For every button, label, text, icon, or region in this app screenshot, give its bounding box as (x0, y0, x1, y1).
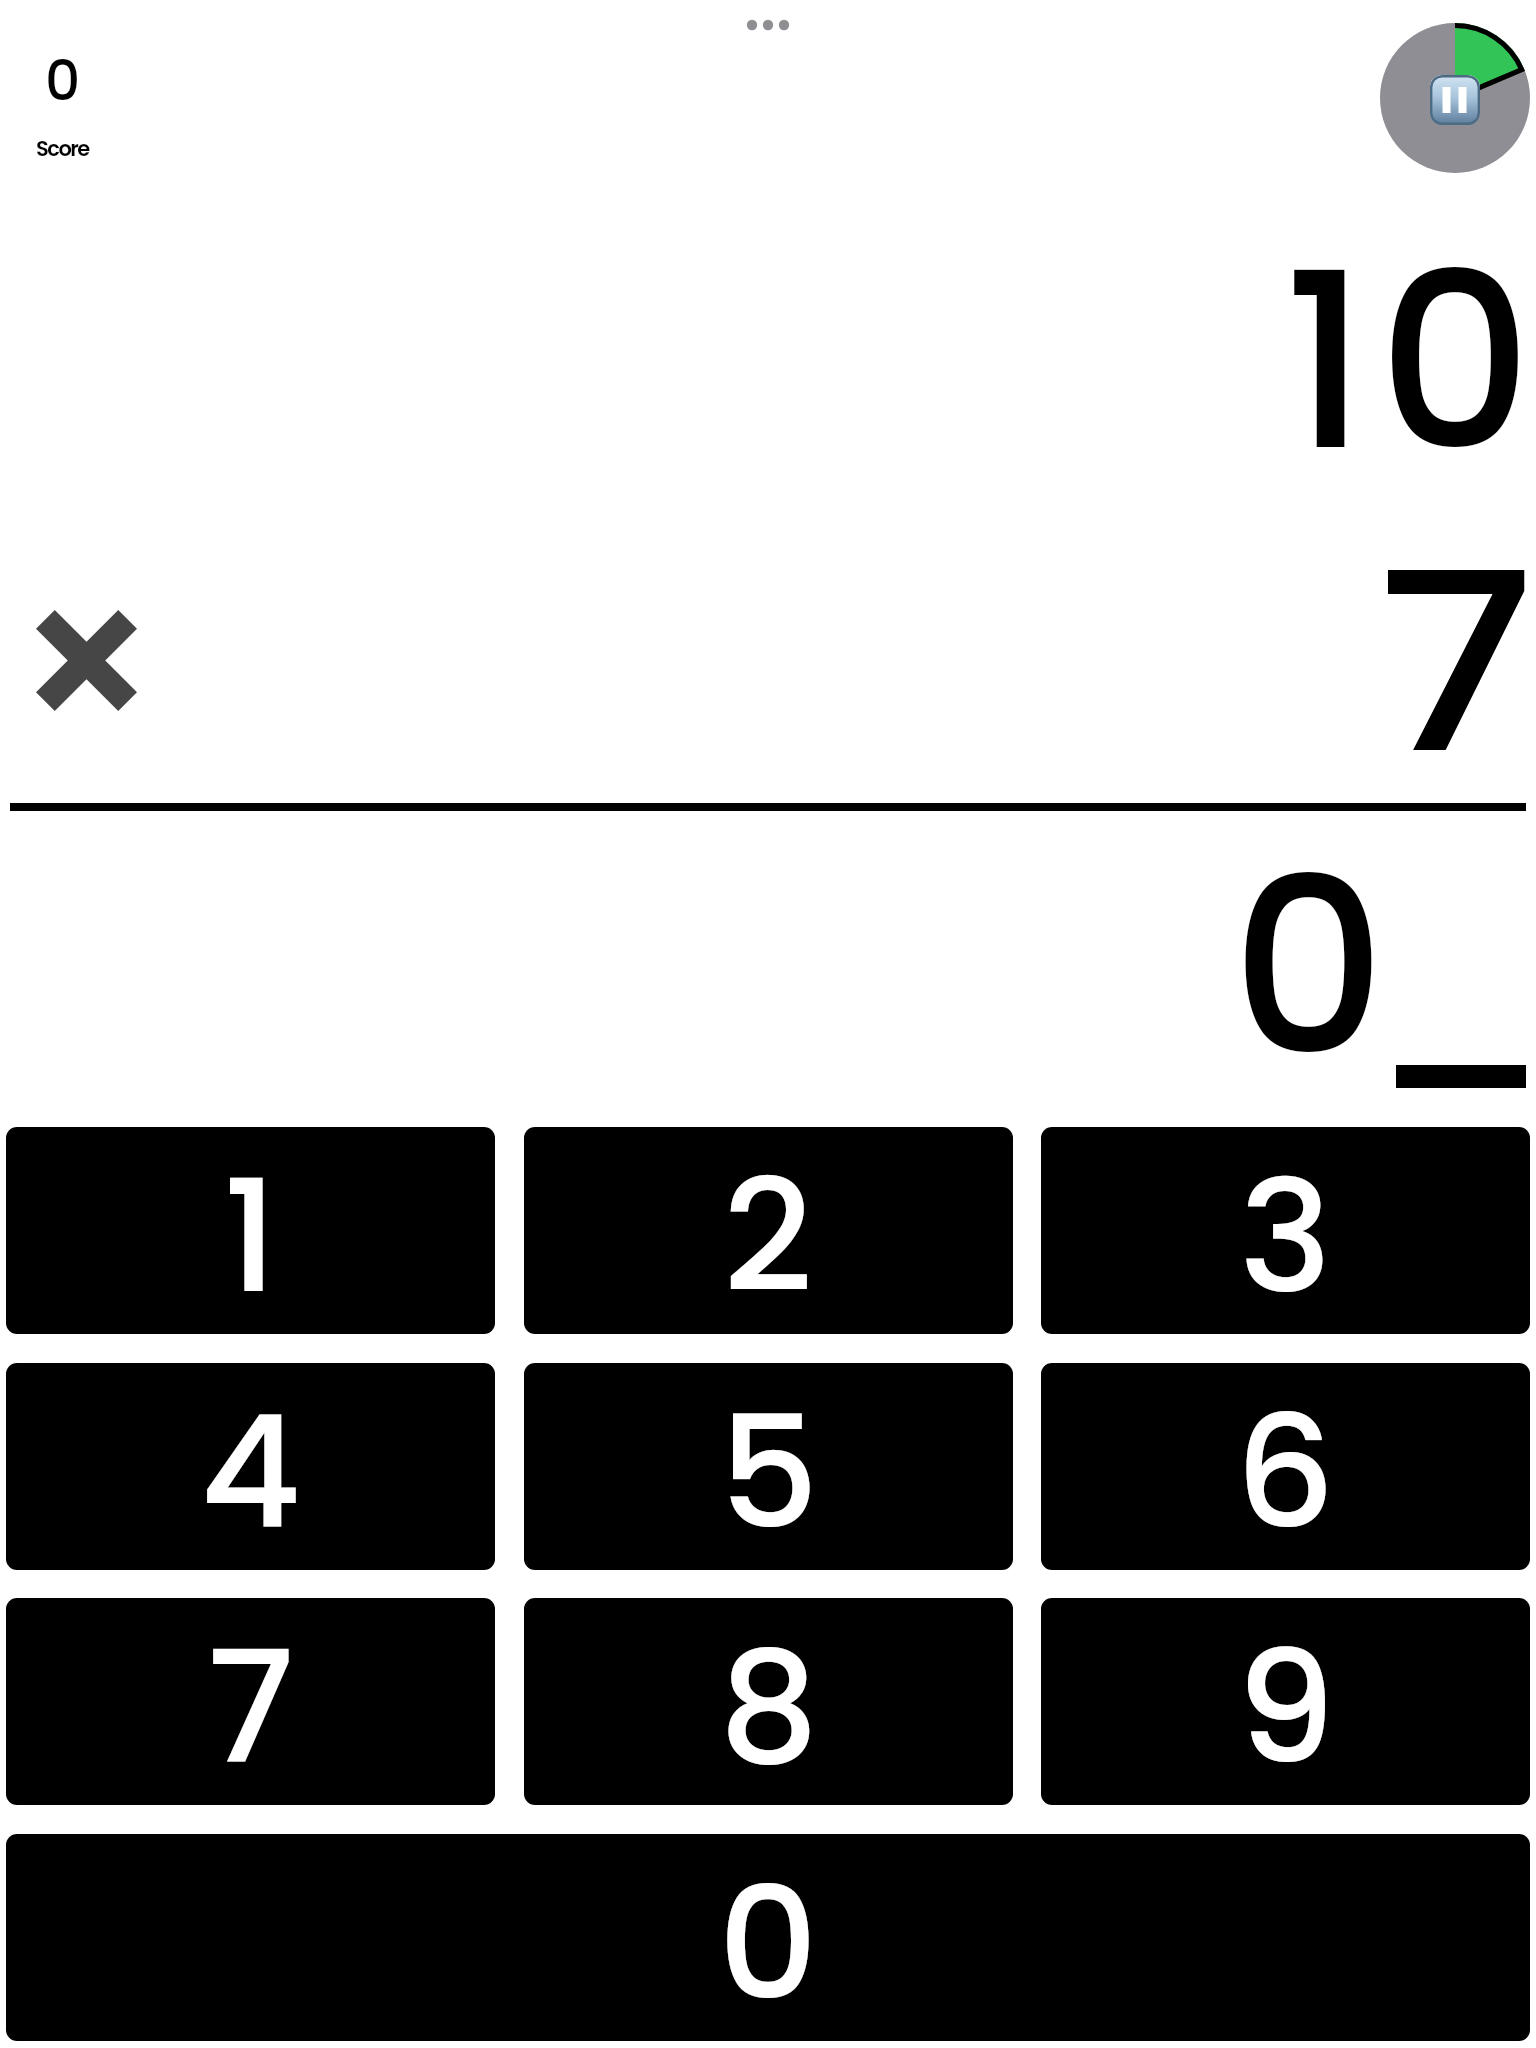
staticText: 4 (200, 1363, 301, 1570)
button[interactable]: 8 (524, 1598, 1013, 1805)
button[interactable]: 6 (1041, 1363, 1530, 1570)
staticText: 8 (719, 1598, 819, 1805)
button[interactable]: Pause (1380, 23, 1530, 173)
button[interactable]: 9 (1041, 1598, 1530, 1805)
button[interactable]: 3 (1041, 1127, 1530, 1334)
button[interactable]: 4 (6, 1363, 495, 1570)
staticText: 5 (719, 1363, 819, 1570)
staticText: 9 (1236, 1598, 1336, 1805)
staticText: 0 (186, 798, 1386, 1137)
staticText: 10 (342, 193, 1536, 532)
button[interactable]: 2 (524, 1127, 1013, 1334)
staticText: 0 (718, 1834, 818, 2041)
staticText: 2 (723, 1127, 814, 1334)
staticText: 6 (1235, 1363, 1336, 1570)
button[interactable]: 0 (6, 1834, 1530, 2041)
staticText: 7 (207, 1598, 295, 1805)
staticText: 3 (1239, 1127, 1332, 1334)
staticText: 1 (223, 1127, 278, 1334)
staticText: 7 (167, 490, 1535, 837)
staticText: Score (36, 134, 89, 163)
button[interactable]: 1 (6, 1127, 495, 1334)
button[interactable]: 7 (6, 1598, 495, 1805)
button[interactable]: 5 (524, 1363, 1013, 1570)
button[interactable]: More options (728, 5, 808, 45)
staticText: 0 (45, 42, 81, 119)
